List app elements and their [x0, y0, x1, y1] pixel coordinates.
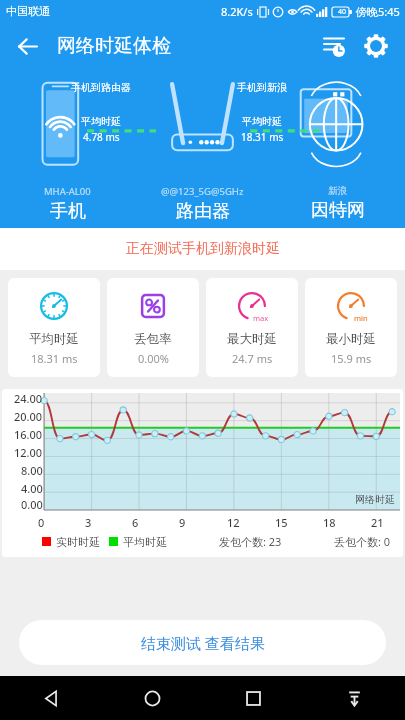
staticText: 新浪 — [328, 185, 347, 197]
staticText: 最大时延 — [227, 331, 277, 347]
staticText: 4.00 — [21, 481, 43, 496]
staticText: 4.78 ms — [83, 130, 120, 144]
staticText: 平均时延 — [81, 115, 121, 128]
staticText: 24.00 — [14, 391, 43, 406]
button[interactable]: 平均时延 — [8, 278, 100, 377]
button[interactable]: Settings — [355, 25, 397, 67]
staticText: 18 — [323, 515, 336, 530]
staticText: 18.31 ms — [31, 351, 78, 366]
button[interactable]: History — [313, 25, 355, 67]
staticText: max — [253, 313, 269, 323]
staticText: 16.00 — [14, 427, 43, 442]
staticText: 手机到路由器 — [71, 81, 131, 94]
staticText: 平均时延 — [29, 331, 79, 347]
staticText: 手机到新浪 — [237, 81, 287, 94]
staticText: 8.00 — [21, 463, 43, 478]
staticText: 网络时延 — [355, 493, 395, 506]
staticText: 12.00 — [14, 445, 43, 460]
staticText: 40 — [338, 7, 347, 17]
staticText: 结束测试 查看结果 — [141, 633, 265, 653]
staticText: 0.00 — [21, 497, 43, 510]
staticText: 0 — [38, 515, 45, 530]
staticText: 实时时延 — [56, 535, 100, 549]
staticText: 网络时延体检 — [57, 34, 171, 58]
staticText: 平均时延 — [242, 115, 282, 128]
button[interactable]: Back — [7, 26, 47, 66]
button[interactable]: Back — [0, 676, 102, 720]
staticText: 丢包率 — [134, 331, 172, 347]
staticText: 15 — [275, 515, 288, 530]
staticText: 最小时延 — [326, 331, 376, 347]
staticText: 中国联通 — [6, 4, 50, 18]
staticText: 21 — [371, 515, 384, 530]
staticText: 9 — [179, 515, 186, 530]
button[interactable]: Recents — [203, 676, 304, 720]
staticText: 15.9 ms — [331, 351, 372, 366]
staticText: 平均时延 — [123, 535, 167, 549]
staticText: 因特网 — [311, 199, 365, 222]
button[interactable]: Home — [102, 676, 203, 720]
button[interactable]: max — [206, 278, 298, 377]
staticText: 18.31 ms — [241, 130, 284, 144]
staticText: 20.00 — [14, 409, 43, 424]
staticText: 8.2K/s — [221, 4, 253, 19]
staticText: 正在测试手机到新浪时延 — [126, 240, 280, 258]
staticText: 24.7 ms — [232, 351, 273, 366]
staticText: 3 — [85, 515, 92, 530]
staticText: min — [354, 313, 368, 323]
staticText: 12 — [227, 515, 240, 530]
button[interactable]: 结束测试 查看结果 — [19, 620, 386, 665]
staticText: @@123_5G@5GHz — [161, 185, 244, 198]
staticText: 傍晚5:45 — [356, 4, 400, 19]
staticText: MHA-AL00 — [44, 185, 91, 198]
staticText: 6 — [132, 515, 139, 530]
button[interactable]: min — [305, 278, 397, 377]
button[interactable]: 丢包率 — [107, 278, 199, 377]
button[interactable]: Hide navigation bar — [304, 676, 405, 720]
staticText: 丢包个数: 0 — [334, 534, 391, 549]
staticText: 0.00% — [138, 351, 169, 366]
staticText: 路由器 — [176, 200, 230, 223]
staticText: 发包个数: 23 — [219, 534, 282, 549]
staticText: 手机 — [50, 200, 86, 223]
